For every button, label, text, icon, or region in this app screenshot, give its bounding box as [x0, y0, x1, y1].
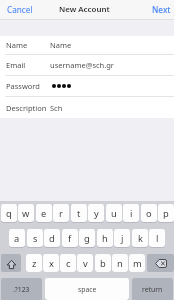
button[interactable]: return: [132, 278, 173, 300]
button[interactable]: a: [9, 229, 25, 247]
staticText: n: [117, 257, 123, 270]
button[interactable]: s: [27, 229, 43, 247]
button[interactable]: n: [112, 254, 128, 272]
button[interactable]: z: [26, 254, 42, 272]
button[interactable]: Description: [0, 97, 174, 118]
staticText: a: [14, 232, 20, 245]
staticText: i: [130, 207, 133, 220]
button[interactable]: v: [77, 254, 93, 272]
staticText: v: [83, 257, 88, 270]
staticText: Name: [50, 40, 72, 50]
button[interactable]: f: [62, 229, 78, 247]
button[interactable]: t: [71, 204, 87, 222]
staticText: j: [121, 232, 124, 245]
staticText: Email: [6, 60, 26, 70]
staticText: Next: [152, 4, 171, 15]
staticText: New Account: [59, 4, 110, 15]
staticText: c: [66, 257, 71, 270]
staticText: q: [6, 207, 12, 220]
button[interactable]: w: [18, 204, 34, 222]
button[interactable]: space: [45, 278, 129, 300]
button[interactable]: Next: [146, 1, 174, 18]
staticText: p: [163, 207, 169, 220]
button[interactable]: o: [141, 204, 157, 222]
staticText: Password: [6, 81, 40, 91]
button[interactable]: m: [129, 254, 145, 272]
staticText: u: [111, 207, 117, 220]
button[interactable]: l: [149, 229, 165, 247]
button[interactable]: b: [95, 254, 111, 272]
button[interactable]: r: [53, 204, 69, 222]
staticText: s: [33, 232, 38, 245]
button[interactable]: k: [132, 229, 148, 247]
button[interactable]: Shift: [1, 254, 21, 272]
staticText: Name: [6, 40, 28, 50]
staticText: z: [32, 257, 37, 270]
button[interactable]: Delete: [147, 254, 174, 272]
staticText: Sch: [50, 103, 63, 113]
button[interactable]: i: [123, 204, 139, 222]
button[interactable]: Name: [0, 36, 174, 54]
button[interactable]: d: [44, 229, 60, 247]
button[interactable]: c: [60, 254, 76, 272]
staticText: e: [41, 207, 47, 220]
staticText: x: [49, 257, 54, 270]
button[interactable]: y: [88, 204, 104, 222]
staticText: r: [59, 207, 63, 220]
button[interactable]: Password: [0, 76, 174, 96]
staticText: .?123: [13, 285, 30, 294]
staticText: username@sch.gr: [50, 60, 114, 70]
button[interactable]: x: [43, 254, 59, 272]
staticText: t: [77, 207, 81, 220]
button[interactable]: Email: [0, 55, 174, 75]
staticText: g: [84, 232, 90, 245]
staticText: Description: [6, 103, 47, 113]
staticText: w: [22, 207, 30, 220]
button[interactable]: e: [36, 204, 52, 222]
button[interactable]: Cancel: [0, 1, 39, 18]
staticText: f: [68, 232, 72, 245]
staticText: d: [49, 232, 55, 245]
staticText: m: [133, 257, 142, 270]
staticText: o: [146, 207, 152, 220]
button[interactable]: p: [158, 204, 174, 222]
button[interactable]: j: [114, 229, 130, 247]
staticText: Cancel: [7, 4, 33, 15]
staticText: k: [138, 232, 143, 245]
button[interactable]: g: [79, 229, 95, 247]
staticText: l: [156, 232, 159, 245]
staticText: space: [78, 285, 97, 294]
staticText: y: [94, 207, 99, 220]
button[interactable]: u: [106, 204, 122, 222]
button[interactable]: q: [1, 204, 17, 222]
staticText: h: [102, 232, 108, 245]
staticText: b: [100, 257, 106, 270]
button[interactable]: h: [97, 229, 113, 247]
staticText: return: [142, 285, 163, 294]
button[interactable]: .?123: [1, 278, 42, 300]
